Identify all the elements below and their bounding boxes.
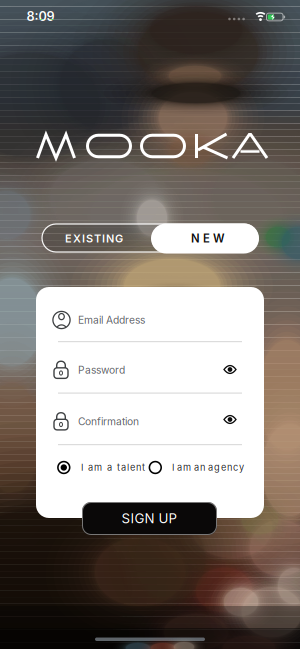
- staticText: Password: [78, 364, 125, 376]
- staticText: Confirmation: [78, 415, 139, 428]
- button[interactable]: Password: [52, 347, 242, 393]
- staticText: Email Address: [78, 314, 145, 326]
- staticText: SIGN UP: [121, 510, 177, 526]
- button[interactable]: N E W: [151, 223, 259, 253]
- button[interactable]: I am an agency: [149, 457, 240, 477]
- button[interactable]: E X I S T I N G: [42, 224, 150, 252]
- button[interactable]: Email Address: [52, 297, 242, 343]
- staticText: I a m a n a g e n c y: [172, 462, 244, 473]
- button[interactable]: Show confirmation: [220, 409, 240, 429]
- staticText: N E W: [191, 232, 225, 245]
- button[interactable]: Show password: [220, 359, 240, 379]
- staticText: E X I S T I N G: [65, 232, 123, 245]
- staticText: I a m a t a l e n t: [81, 462, 145, 473]
- staticText: 8:09: [26, 9, 54, 24]
- button[interactable]: Confirmation: [52, 398, 242, 444]
- button[interactable]: I am a talent: [57, 457, 147, 477]
- button[interactable]: SIGN UP: [82, 502, 217, 535]
